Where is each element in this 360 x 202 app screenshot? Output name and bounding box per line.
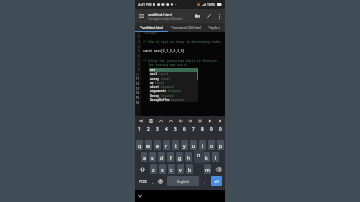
staticText: untitled.html bbox=[148, 12, 172, 17]
button[interactable]: f bbox=[167, 152, 174, 162]
staticText: 5 bbox=[174, 126, 177, 132]
staticText: 13 bbox=[136, 87, 140, 91]
button[interactable]: 4 bbox=[162, 125, 171, 133]
staticText: a bbox=[143, 154, 146, 161]
staticText: keyword bbox=[161, 94, 174, 98]
staticText: u bbox=[192, 142, 196, 149]
button[interactable]: s bbox=[149, 152, 156, 162]
button[interactable]: w bbox=[145, 140, 152, 150]
button[interactable]: p bbox=[217, 140, 224, 150]
button[interactable]: x bbox=[159, 164, 166, 174]
button[interactable]: 6 bbox=[180, 125, 189, 133]
button[interactable]: *style.c bbox=[204, 23, 225, 32]
staticText: keyword bbox=[161, 85, 174, 89]
staticText: *style.c bbox=[208, 25, 221, 30]
button[interactable]: m bbox=[204, 164, 211, 174]
staticText: o bbox=[210, 142, 214, 149]
staticText: local bbox=[159, 72, 169, 76]
staticText: 7 bbox=[138, 59, 140, 63]
button[interactable]: Shift bbox=[136, 164, 148, 174]
staticText: 1 bbox=[138, 126, 141, 132]
staticText: q bbox=[138, 142, 142, 149]
button[interactable]: Array bbox=[149, 94, 198, 98]
button[interactable]: q bbox=[136, 140, 143, 150]
button[interactable]: Close bbox=[215, 116, 224, 125]
button[interactable]: ArrayBuffer bbox=[149, 98, 198, 102]
button[interactable]: Backspace bbox=[213, 164, 224, 174]
button[interactable]: y bbox=[181, 140, 188, 150]
button[interactable]: u bbox=[190, 140, 197, 150]
button[interactable]: Save bbox=[195, 116, 204, 125]
staticText: h bbox=[187, 154, 191, 161]
staticText: arr1 bbox=[150, 72, 158, 76]
staticText: r bbox=[165, 142, 168, 149]
button[interactable]: Move right bbox=[185, 116, 194, 125]
button[interactable]: i bbox=[199, 140, 206, 150]
button[interactable]: c bbox=[168, 164, 175, 174]
button[interactable]: 9 bbox=[207, 125, 216, 133]
button[interactable]: j bbox=[194, 152, 201, 162]
button[interactable]: *noname(26).html bbox=[168, 23, 204, 32]
button[interactable]: k bbox=[203, 152, 210, 162]
button[interactable]: array bbox=[149, 77, 198, 81]
staticText: 1 bbox=[138, 31, 140, 35]
button[interactable]: Redo bbox=[166, 116, 175, 125]
button[interactable]: 2 bbox=[144, 125, 153, 133]
button[interactable]: a bbox=[141, 152, 147, 162]
button[interactable]: h bbox=[185, 152, 192, 162]
button[interactable]: 8 bbox=[198, 125, 207, 133]
staticText: const arr=[2,1,5,4,3,6] bbox=[143, 49, 185, 53]
staticText: i bbox=[202, 142, 204, 149]
button[interactable]: English bbox=[167, 176, 199, 186]
button[interactable]: Run bbox=[205, 116, 214, 125]
button[interactable]: Paste bbox=[146, 116, 155, 125]
button[interactable]: . bbox=[201, 175, 208, 187]
staticText: 2 bbox=[138, 35, 140, 39]
button[interactable]: g bbox=[176, 152, 183, 162]
button[interactable]: ?123 bbox=[137, 176, 148, 186]
button[interactable]: Undo bbox=[156, 116, 165, 125]
button[interactable]: Open file bbox=[192, 9, 203, 23]
button[interactable]: e bbox=[154, 140, 161, 150]
staticText: n bbox=[197, 151, 201, 158]
button[interactable]: alert bbox=[149, 85, 198, 89]
button[interactable]: Back bbox=[135, 191, 145, 201]
button[interactable]: More options bbox=[214, 9, 225, 23]
button[interactable]: arr1 bbox=[149, 72, 198, 76]
staticText: ar bbox=[150, 81, 154, 85]
button[interactable]: Move left bbox=[176, 116, 185, 125]
button[interactable]: 3 bbox=[153, 125, 162, 133]
button[interactable]: t bbox=[172, 140, 179, 150]
staticText: English bbox=[177, 179, 189, 184]
button[interactable]: 0 bbox=[216, 125, 225, 133]
staticText: c bbox=[170, 166, 173, 173]
button[interactable]: b bbox=[186, 164, 193, 174]
button[interactable]: *untitled.html bbox=[135, 23, 168, 32]
button[interactable]: 1 bbox=[135, 125, 144, 133]
button[interactable]: ar bbox=[149, 81, 198, 85]
staticText: <script> bbox=[143, 31, 158, 35]
staticText: s bbox=[151, 154, 154, 161]
staticText: arguments bbox=[150, 89, 167, 93]
staticText: f bbox=[170, 154, 172, 161]
button[interactable]: 5 bbox=[171, 125, 180, 133]
staticText: local bbox=[161, 77, 171, 81]
button[interactable]: l bbox=[212, 152, 219, 162]
button[interactable]: Edit bbox=[203, 9, 214, 23]
button[interactable]: v bbox=[177, 164, 184, 174]
button[interactable]: , bbox=[150, 175, 156, 187]
button[interactable]: o bbox=[208, 140, 215, 150]
button[interactable]: Enter bbox=[211, 176, 222, 186]
button[interactable]: arguments bbox=[149, 89, 198, 93]
button[interactable]: r bbox=[163, 140, 170, 150]
button[interactable]: d bbox=[158, 152, 165, 162]
button[interactable]: z bbox=[150, 164, 157, 174]
staticText: . bbox=[204, 179, 206, 184]
staticText: e bbox=[156, 142, 159, 149]
button[interactable]: 7 bbox=[189, 125, 198, 133]
button[interactable]: Open navigation menu bbox=[135, 9, 148, 23]
button[interactable]: Insert tab bbox=[136, 116, 145, 125]
button[interactable]: Emoji bbox=[156, 175, 165, 187]
button[interactable]: arr bbox=[149, 68, 198, 72]
